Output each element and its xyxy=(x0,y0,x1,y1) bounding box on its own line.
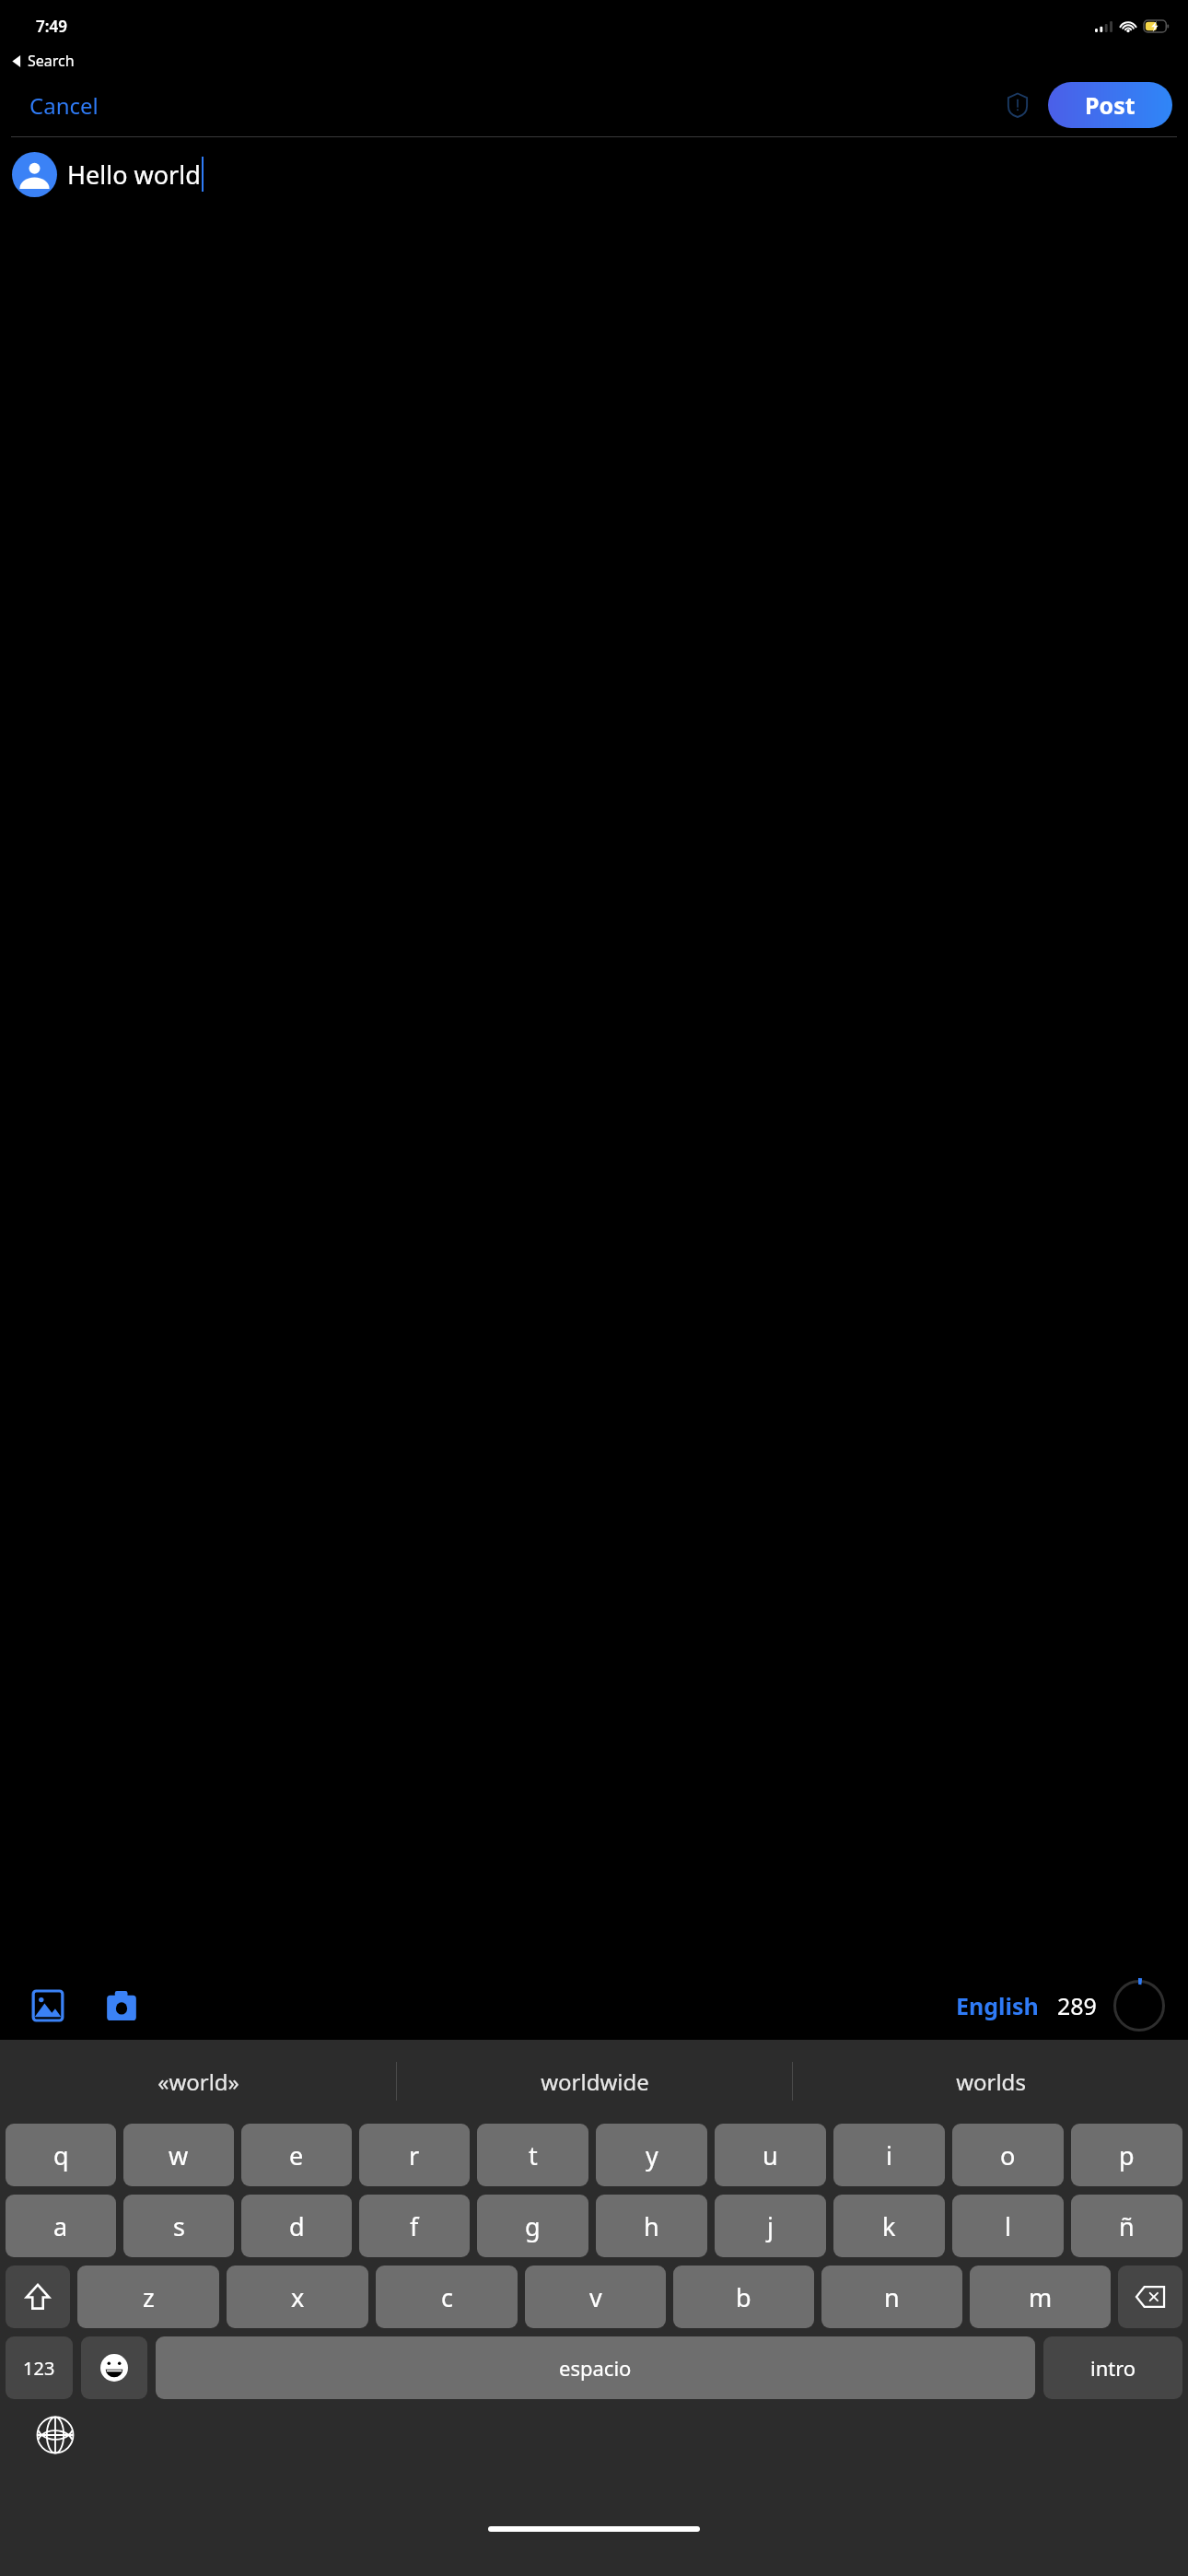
button[interactable]: English xyxy=(952,1986,1042,2025)
button[interactable]: f xyxy=(359,2195,470,2257)
button[interactable]: Emoji xyxy=(81,2336,147,2399)
button[interactable]: d xyxy=(241,2195,352,2257)
button[interactable]: s xyxy=(123,2195,234,2257)
button[interactable]: y xyxy=(596,2124,707,2186)
button[interactable]: h xyxy=(596,2195,707,2257)
staticText: ñ xyxy=(1119,2209,1135,2243)
button[interactable]: Backspace xyxy=(1118,2266,1182,2328)
staticText: intro xyxy=(1090,2354,1136,2382)
staticText: k xyxy=(882,2209,896,2243)
staticText: q xyxy=(53,2138,69,2172)
staticText: b xyxy=(736,2280,751,2314)
button[interactable]: z xyxy=(77,2266,219,2328)
staticText: m xyxy=(1029,2280,1053,2314)
staticText: x xyxy=(291,2280,305,2314)
button[interactable]: ñ xyxy=(1071,2195,1182,2257)
staticText: Search xyxy=(28,51,75,71)
button[interactable]: Cancel xyxy=(18,85,110,126)
button[interactable]: worldwide xyxy=(397,2040,792,2123)
staticText: d xyxy=(289,2209,305,2243)
button[interactable]: p xyxy=(1071,2124,1182,2186)
button[interactable]: k xyxy=(833,2195,945,2257)
staticText: Hello world xyxy=(67,158,201,192)
button[interactable]: b xyxy=(673,2266,814,2328)
button[interactable]: c xyxy=(376,2266,518,2328)
button[interactable]: x xyxy=(227,2266,368,2328)
staticText: r xyxy=(409,2138,420,2172)
staticText: c xyxy=(441,2280,453,2314)
staticText: o xyxy=(1000,2138,1016,2172)
button[interactable]: l xyxy=(952,2195,1064,2257)
button[interactable]: «world» xyxy=(0,2040,396,2123)
staticText: 289 xyxy=(1057,1990,1097,2021)
staticText: h xyxy=(644,2209,659,2243)
staticText: t xyxy=(529,2138,538,2172)
staticText: n xyxy=(884,2280,900,2314)
staticText: e xyxy=(289,2138,304,2172)
staticText: p xyxy=(1119,2138,1135,2172)
staticText: a xyxy=(53,2209,68,2243)
button[interactable]: Content warning xyxy=(998,86,1037,124)
staticText: u xyxy=(763,2138,778,2172)
button[interactable]: Post xyxy=(1048,82,1172,128)
button[interactable]: worlds xyxy=(793,2040,1188,2123)
staticText: j xyxy=(767,2209,774,2243)
button[interactable]: Search xyxy=(11,48,75,74)
staticText: s xyxy=(173,2209,185,2243)
button[interactable]: e xyxy=(241,2124,352,2186)
button[interactable]: j xyxy=(715,2195,826,2257)
button[interactable]: q xyxy=(6,2124,116,2186)
staticText: f xyxy=(410,2209,419,2243)
button[interactable]: 123 xyxy=(6,2336,73,2399)
button[interactable]: t xyxy=(477,2124,588,2186)
staticText: English xyxy=(956,1990,1039,2021)
staticText: Post xyxy=(1085,89,1136,121)
button[interactable]: Shift xyxy=(6,2266,70,2328)
staticText: v xyxy=(589,2280,602,2314)
button[interactable]: a xyxy=(6,2195,116,2257)
button[interactable]: Camera xyxy=(96,1980,147,2032)
button[interactable]: w xyxy=(123,2124,234,2186)
staticText: g xyxy=(525,2209,541,2243)
staticText: Cancel xyxy=(29,90,99,121)
staticText: espacio xyxy=(559,2354,632,2382)
staticText: z xyxy=(143,2280,155,2314)
button[interactable]: u xyxy=(715,2124,826,2186)
staticText: 7:49 xyxy=(36,16,67,37)
button[interactable]: Add photo xyxy=(22,1980,74,2032)
button[interactable]: v xyxy=(525,2266,666,2328)
staticText: l xyxy=(1005,2209,1011,2243)
button[interactable]: g xyxy=(477,2195,588,2257)
staticText: worlds xyxy=(956,2067,1026,2097)
button[interactable]: m xyxy=(970,2266,1111,2328)
staticText: y xyxy=(646,2138,658,2172)
staticText: w xyxy=(169,2138,189,2172)
button[interactable]: o xyxy=(952,2124,1064,2186)
staticText: i xyxy=(886,2138,892,2172)
button[interactable]: r xyxy=(359,2124,470,2186)
button[interactable]: i xyxy=(833,2124,945,2186)
staticText: 123 xyxy=(23,2356,55,2381)
button[interactable]: intro xyxy=(1043,2336,1182,2399)
button[interactable]: Change keyboard xyxy=(31,2411,79,2459)
staticText: worldwide xyxy=(541,2067,649,2097)
staticText: «world» xyxy=(157,2067,239,2097)
button[interactable]: espacio xyxy=(156,2336,1035,2399)
button[interactable]: n xyxy=(821,2266,962,2328)
